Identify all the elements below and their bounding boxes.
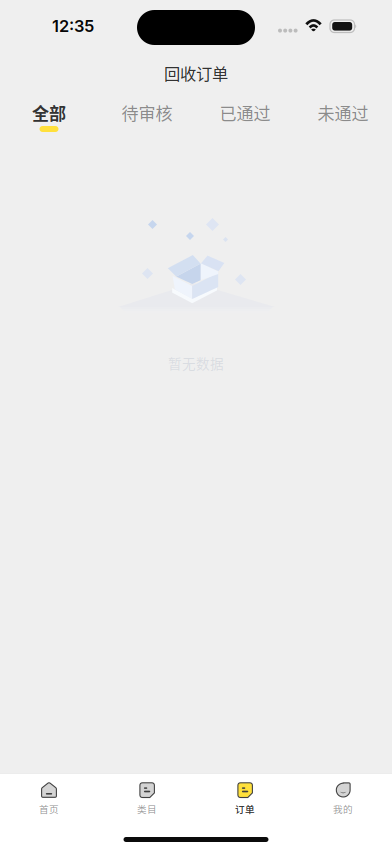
staticText: 暂无数据 [168,353,224,373]
staticText: 回收订单 [164,61,228,85]
button[interactable]: 已通过 [196,104,294,132]
staticText: 全部 [32,100,66,125]
staticText: 我的 [333,802,353,816]
button[interactable]: 订单 [196,782,294,814]
button[interactable]: 待审核 [98,104,196,132]
button[interactable]: 首页 [0,782,98,814]
staticText: 订单 [235,802,255,816]
staticText: 首页 [39,802,59,816]
button[interactable]: 未通过 [294,104,392,132]
staticText: 12:35 [52,16,94,36]
staticText: 待审核 [121,100,172,125]
staticText: 已通过 [219,100,270,125]
button[interactable]: 我的 [294,782,392,814]
staticText: 类目 [137,802,157,816]
staticText: 未通过 [317,100,368,125]
button[interactable]: 类目 [98,782,196,814]
button[interactable]: 全部 [0,104,98,132]
